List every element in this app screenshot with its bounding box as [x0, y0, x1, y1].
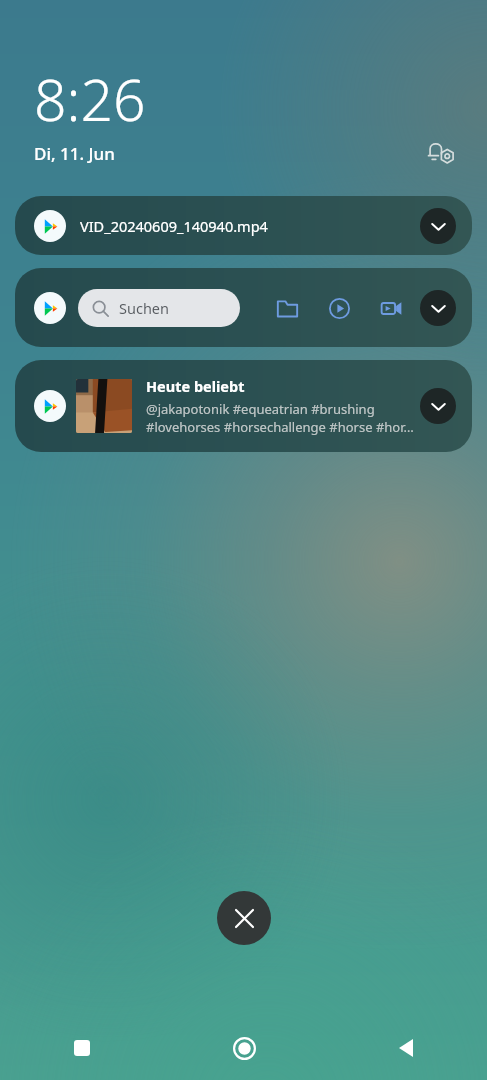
button[interactable]: Heute beliebt	[15, 360, 472, 452]
button[interactable]: Home	[163, 1022, 325, 1074]
button[interactable]: Expand notification	[420, 388, 456, 424]
staticText: #lovehorses #horsechallenge #horse #hor…	[146, 418, 414, 436]
button[interactable]: Folder	[270, 291, 304, 325]
button[interactable]: Clear all notifications	[217, 891, 271, 945]
staticText: 8:26	[34, 60, 146, 138]
button[interactable]: Expand notification	[420, 208, 456, 244]
staticText: VID_20240609_140940.mp4	[80, 216, 412, 236]
button[interactable]: Play	[322, 291, 356, 325]
button[interactable]: Back	[325, 1022, 487, 1074]
button[interactable]: Notification settings	[421, 132, 461, 172]
staticText: @jakapotonik #equeatrian #brushing	[146, 400, 375, 418]
button[interactable]: Suchen	[78, 289, 240, 327]
button[interactable]: VID_20240609_140940.mp4	[15, 196, 472, 255]
button[interactable]: Recents	[0, 1022, 163, 1074]
button[interactable]: Expand notification	[420, 290, 456, 326]
button[interactable]: Video	[374, 291, 408, 325]
staticText: Suchen	[119, 298, 169, 318]
staticText: Heute beliebt	[146, 376, 245, 396]
staticText: Di, 11. Jun	[34, 142, 115, 165]
button[interactable]: Suchen	[15, 268, 472, 347]
